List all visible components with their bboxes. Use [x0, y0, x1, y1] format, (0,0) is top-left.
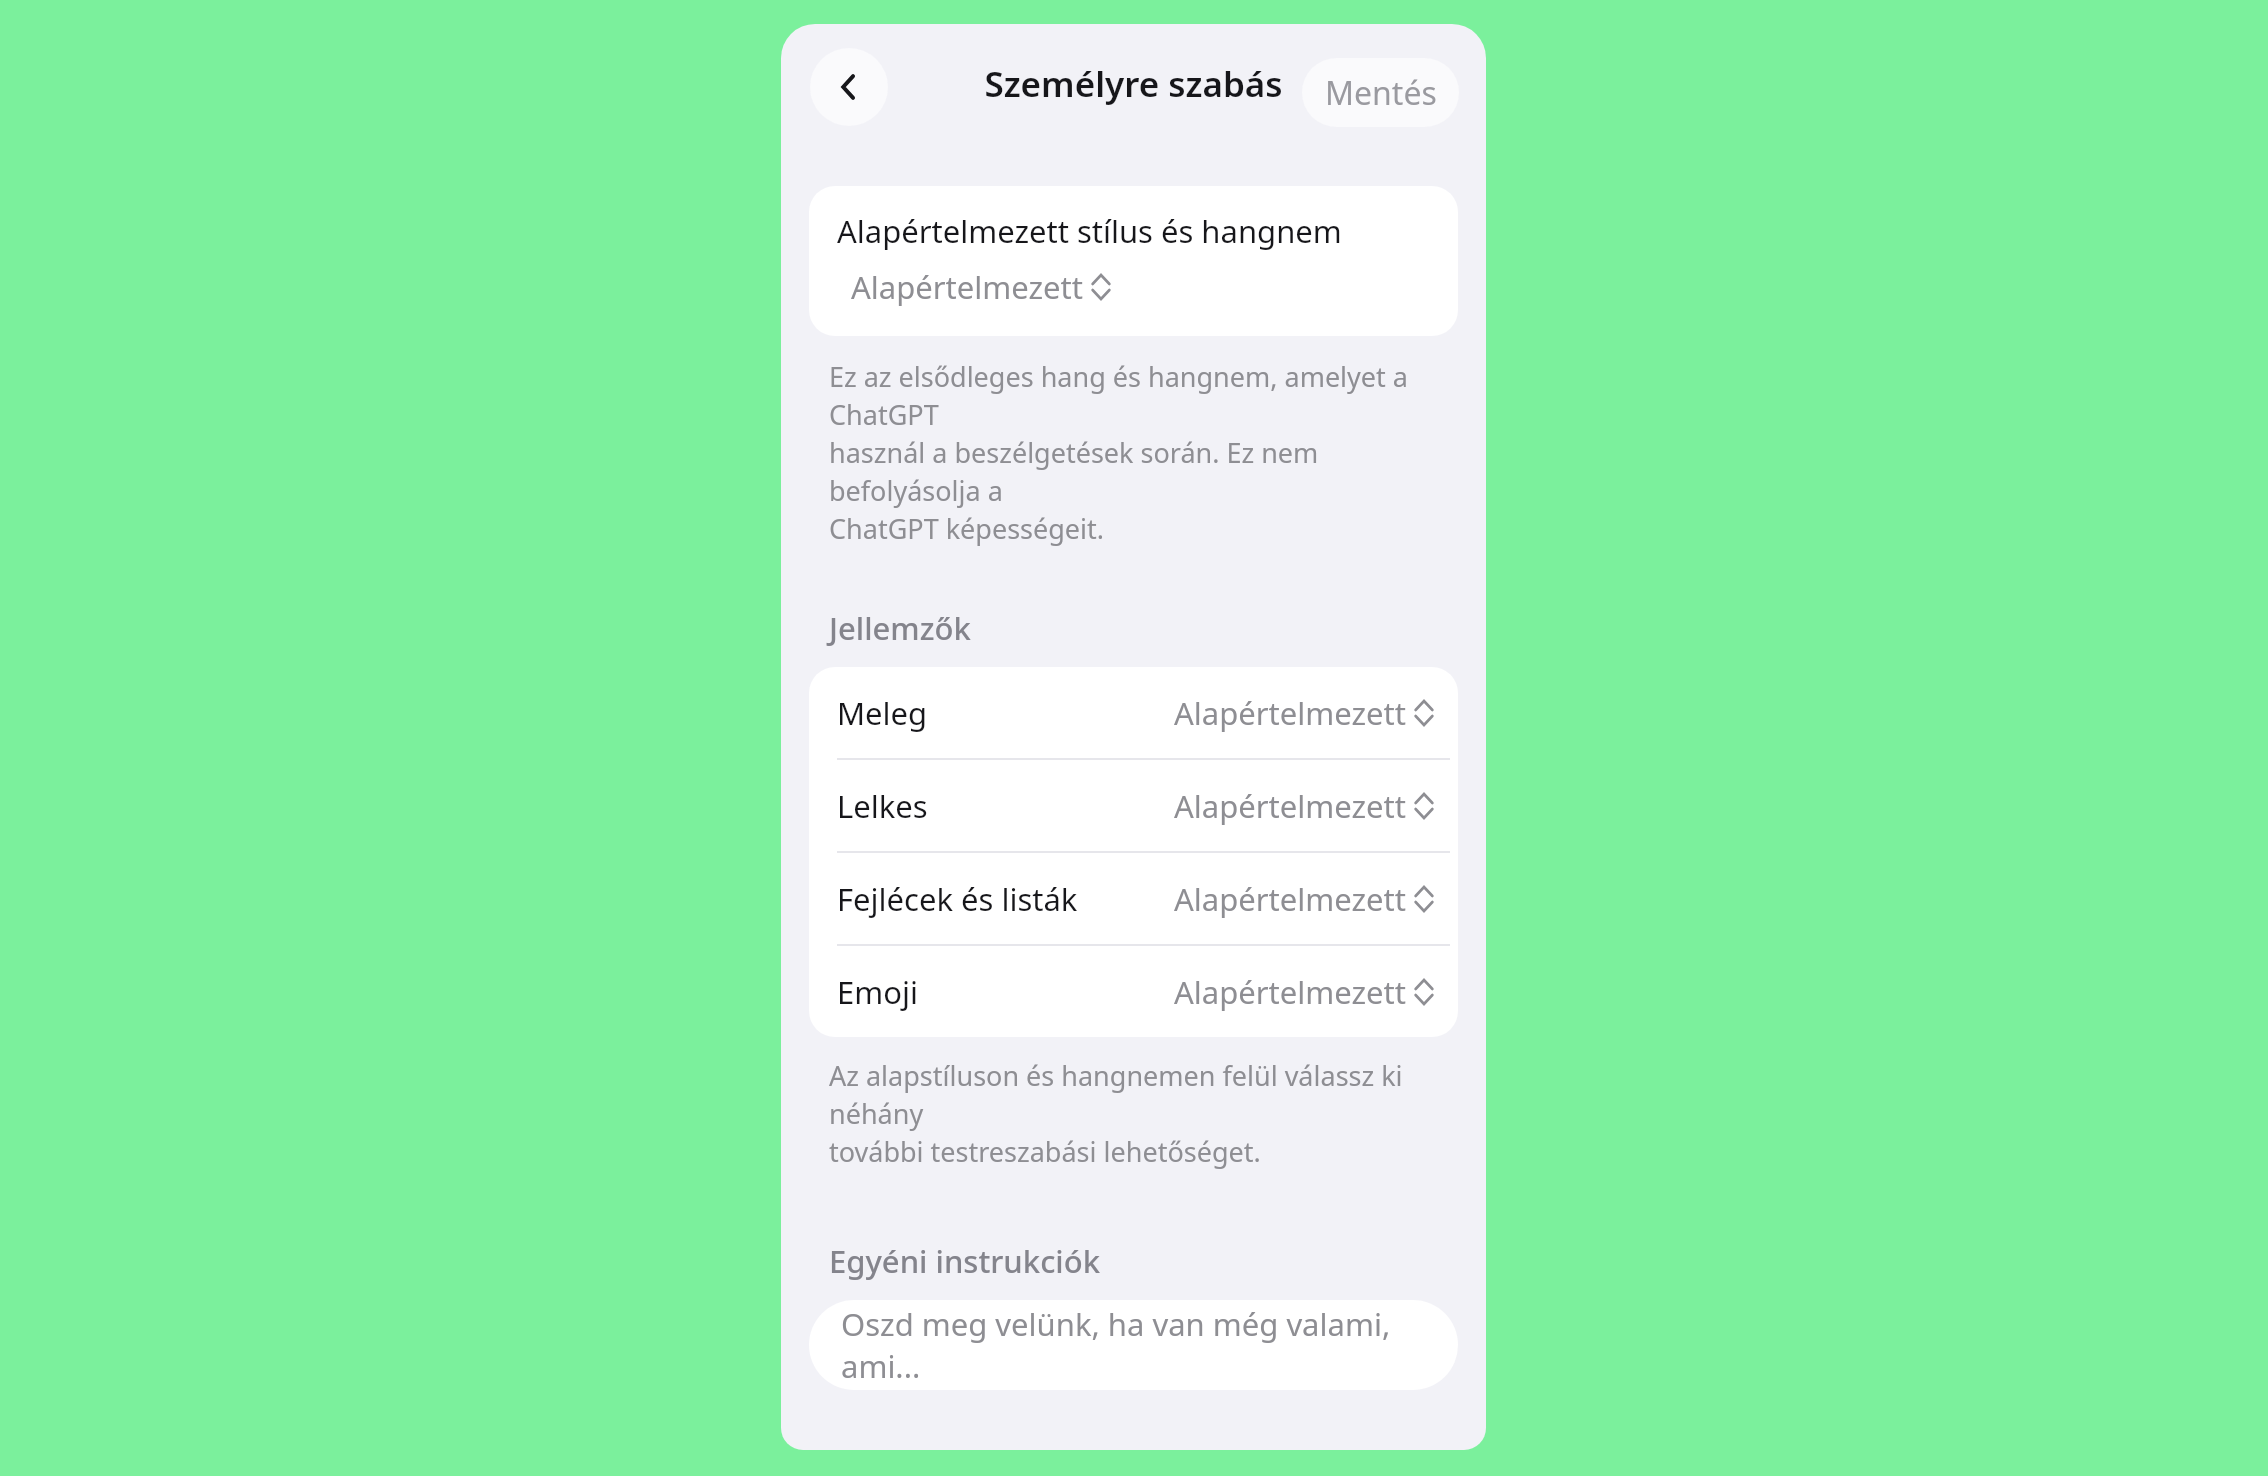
staticText: Alapértelmezett	[1174, 971, 1406, 1013]
staticText: Emoji	[837, 971, 918, 1013]
button[interactable]: Lelkes	[809, 760, 1458, 851]
staticText: Fejlécek és listák	[837, 878, 1078, 920]
staticText: Jellemzők	[829, 607, 971, 649]
staticText: Lelkes	[837, 785, 928, 827]
button[interactable]: Emoji	[809, 946, 1458, 1037]
staticText: Alapértelmezett	[1174, 692, 1406, 734]
staticText: Alapértelmezett	[1174, 785, 1406, 827]
button[interactable]: Oszd meg velünk, ha van még valami, ami.…	[809, 1300, 1458, 1390]
button[interactable]: Fejlécek és listák	[809, 853, 1458, 944]
staticText: Alapértelmezett stílus és hangnem	[837, 210, 1342, 252]
button[interactable]: Meleg	[809, 667, 1458, 758]
staticText: Ez az elsődleges hang és hangnem, amelye…	[829, 358, 1438, 547]
button[interactable]: Alapértelmezett stílus és hangnem	[809, 186, 1458, 336]
staticText: Alapértelmezett	[1174, 878, 1406, 920]
staticText: Az alapstíluson és hangnemen felül válas…	[829, 1057, 1438, 1170]
staticText: Meleg	[837, 692, 928, 734]
staticText: Személyre szabás	[984, 60, 1283, 108]
staticText: Oszd meg velünk, ha van még valami, ami.…	[841, 1303, 1458, 1387]
button[interactable]: Mentés	[1302, 58, 1459, 127]
staticText: Alapértelmezett	[851, 266, 1083, 308]
staticText: Mentés	[1325, 71, 1437, 115]
button[interactable]: Back	[810, 48, 888, 126]
staticText: Egyéni instrukciók	[829, 1240, 1101, 1282]
